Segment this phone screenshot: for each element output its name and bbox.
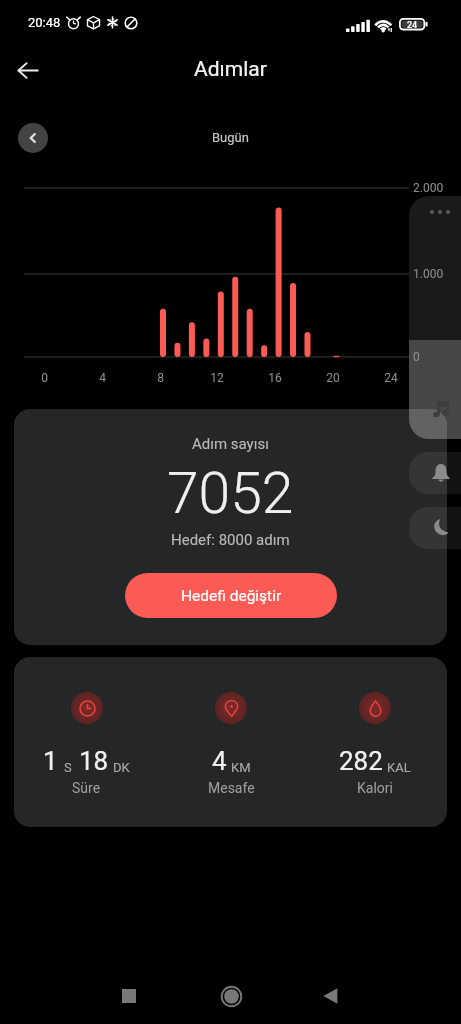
staticText: KM [231,760,251,775]
staticText: Adım sayısı [192,435,269,453]
button[interactable]: Recents [105,972,153,1020]
staticText: Süre [72,780,101,796]
staticText: 18 [79,746,109,776]
staticText: 282 [339,746,383,776]
staticText: 16 [268,371,282,385]
staticText: Adımlar [194,57,267,82]
button[interactable]: Hedefi değiştir [125,573,337,618]
staticText: 2.000 [413,181,444,195]
staticText: Kalori [357,780,393,796]
staticText: 1.000 [413,267,444,281]
button[interactable]: Notifications [409,452,461,494]
staticText: 0 [41,371,48,385]
staticText: Bugün [212,130,249,145]
button[interactable]: Previous day [18,123,48,153]
button[interactable]: Back [8,50,48,90]
staticText: 4 [212,746,227,776]
button[interactable]: Side panel [409,196,461,439]
staticText: Hedefi değiştir [181,587,282,605]
staticText: 1 [43,746,58,776]
staticText: 12 [210,371,224,385]
staticText: 7052 [167,460,294,527]
staticText: 4 [99,371,106,385]
staticText: Hedef: 8000 adım [171,531,290,549]
staticText: 24 [407,20,418,31]
staticText: 24 [384,371,398,385]
staticText: Mesafe [208,780,255,796]
staticText: KAL [387,760,411,775]
button[interactable]: Home [207,972,255,1020]
staticText: 20:48 [28,15,61,30]
staticText: 8 [157,371,164,385]
staticText: S [64,760,72,775]
button[interactable]: Back [306,972,354,1020]
button[interactable]: Do not disturb [409,507,461,549]
staticText: DK [113,760,130,775]
staticText: 20 [326,371,340,385]
staticText: 0 [413,350,420,364]
